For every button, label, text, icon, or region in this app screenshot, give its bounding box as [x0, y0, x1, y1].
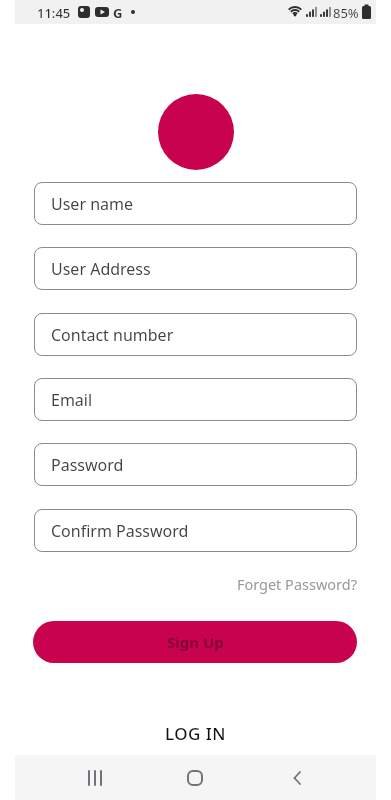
button[interactable]: User Address [34, 247, 357, 290]
button[interactable]: Contact number [34, 313, 357, 356]
staticText: Sign Up [167, 632, 224, 652]
staticText: Password [51, 454, 124, 476]
staticText: Contact number [51, 324, 174, 346]
button[interactable] [281, 762, 313, 794]
button[interactable] [79, 762, 111, 794]
button[interactable]: Sign Up [33, 621, 357, 663]
staticText: Email [51, 389, 93, 411]
staticText: 11:45 [37, 4, 71, 22]
staticText: LOG IN [165, 722, 227, 745]
button[interactable]: LOG IN [0, 722, 391, 745]
button[interactable]: Forget Password? [0, 574, 357, 594]
staticText: User Address [51, 258, 151, 280]
button[interactable]: User name [34, 182, 357, 225]
button[interactable] [179, 762, 211, 794]
staticText: 85% [333, 4, 359, 22]
button[interactable]: Confirm Password [34, 509, 357, 552]
staticText: User name [51, 193, 134, 215]
staticText: Confirm Password [51, 520, 189, 542]
staticText: G [113, 4, 123, 22]
button[interactable]: Password [34, 443, 357, 486]
button[interactable]: Email [34, 378, 357, 421]
